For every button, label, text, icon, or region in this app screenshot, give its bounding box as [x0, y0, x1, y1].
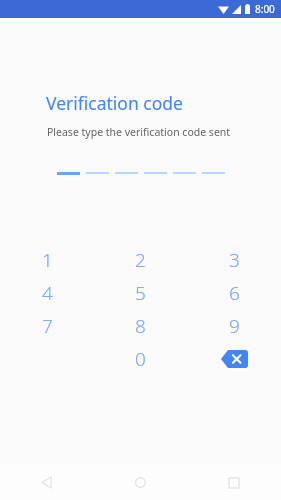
- button[interactable]: 1: [25, 243, 69, 276]
- button[interactable]: 2: [118, 243, 162, 276]
- staticText: 1: [42, 247, 53, 273]
- staticText: 9: [229, 313, 240, 339]
- button[interactable]: 0: [118, 342, 162, 375]
- staticText: 6: [229, 280, 240, 306]
- button[interactable]: 3: [212, 243, 256, 276]
- staticText: 4: [42, 280, 53, 306]
- staticText: Verification code: [46, 91, 183, 115]
- button[interactable]: 6: [212, 276, 256, 309]
- button[interactable]: 5: [118, 276, 162, 309]
- button[interactable]: 9: [212, 309, 256, 342]
- button[interactable]: 7: [25, 309, 69, 342]
- staticText: 7: [42, 313, 53, 339]
- button[interactable]: 4: [25, 276, 69, 309]
- staticText: 8: [135, 313, 146, 339]
- staticText: 0: [135, 346, 146, 372]
- staticText: Please type the verification code sent: [47, 125, 231, 139]
- staticText: 8:00: [255, 2, 275, 16]
- button[interactable]: Backspace: [212, 342, 256, 375]
- staticText: 5: [135, 280, 146, 306]
- button[interactable]: 8: [118, 309, 162, 342]
- staticText: 2: [135, 247, 146, 273]
- staticText: 3: [229, 247, 240, 273]
